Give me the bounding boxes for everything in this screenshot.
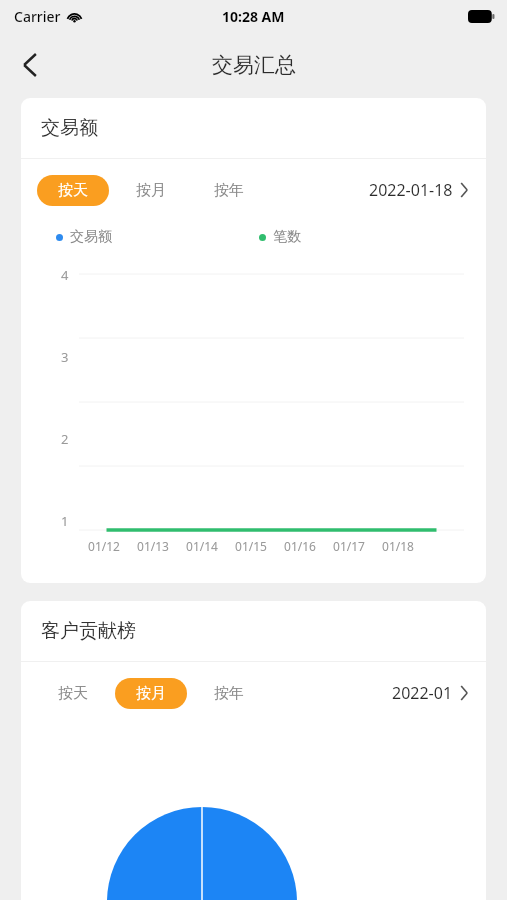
staticText: 01/14 xyxy=(186,538,218,554)
staticText: 01/18 xyxy=(382,538,414,554)
staticText: 01/16 xyxy=(284,538,316,554)
staticText: 按年 xyxy=(214,684,244,703)
button[interactable]: 按天 xyxy=(37,175,109,206)
staticText: 01/12 xyxy=(88,538,120,554)
staticText: 按月 xyxy=(136,181,166,200)
staticText: 2022-01-18 xyxy=(369,179,453,201)
button[interactable]: 2022-01-18 xyxy=(365,173,472,207)
button[interactable]: 按年 xyxy=(193,678,265,709)
button[interactable]: Back xyxy=(8,43,52,87)
staticText: 3 xyxy=(61,348,69,366)
staticText: 2 xyxy=(61,430,69,448)
staticText: 笔数 xyxy=(273,228,301,246)
staticText: 交易额 xyxy=(70,228,112,246)
staticText: 按天 xyxy=(58,684,88,703)
staticText: 交易额 xyxy=(41,116,98,140)
button[interactable]: 按年 xyxy=(193,175,265,206)
staticText: 01/17 xyxy=(333,538,365,554)
button[interactable]: 2022-01 xyxy=(388,676,472,710)
staticText: 1 xyxy=(61,512,69,530)
staticText: 交易汇总 xyxy=(212,52,296,78)
staticText: 01/13 xyxy=(137,538,169,554)
staticText: 4 xyxy=(61,266,69,284)
button[interactable]: 按天 xyxy=(37,678,109,709)
staticText: 2022-01 xyxy=(392,682,453,704)
staticText: 按月 xyxy=(136,684,166,703)
staticText: 按年 xyxy=(214,181,244,200)
button[interactable]: 按月 xyxy=(115,175,187,206)
button[interactable]: 按月 xyxy=(115,678,187,709)
staticText: Carrier xyxy=(14,7,61,26)
staticText: 01/15 xyxy=(235,538,267,554)
staticText: 客户贡献榜 xyxy=(41,619,136,643)
staticText: 10:28 AM xyxy=(222,7,285,26)
staticText: 按天 xyxy=(58,181,88,200)
